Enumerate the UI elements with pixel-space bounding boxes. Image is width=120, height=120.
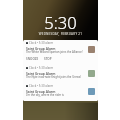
staticText: 5:30 [23,11,98,33]
staticText: The White Wizard Spartan joins the Allia… [26,50,83,54]
staticText: WEDNESDAY, FEBRUARY 21 [23,32,98,36]
button[interactable]: Clock • 5:30 alarm [23,40,98,65]
staticText: Clock • 5:30 alarm [29,84,54,88]
staticText: Clock • 5:30 alarm [29,66,54,70]
staticText: Saint Group Alarm [26,71,56,75]
button[interactable]: STOP [44,57,52,61]
staticText: Saint Group Alarm [26,89,56,93]
button[interactable]: Clock • 5:30 alarm [23,65,98,83]
button[interactable]: Clock • 5:30 alarm [23,83,98,101]
button[interactable]: SNOOZE [26,57,39,61]
staticText: The Nyte incarnate Knight joins the Unre… [26,75,81,79]
staticText: Clock • 5:30 alarm [29,41,54,45]
staticText: I'm the sky, where the rider is [26,93,64,97]
staticText: Saint Group Alarm [26,46,56,50]
